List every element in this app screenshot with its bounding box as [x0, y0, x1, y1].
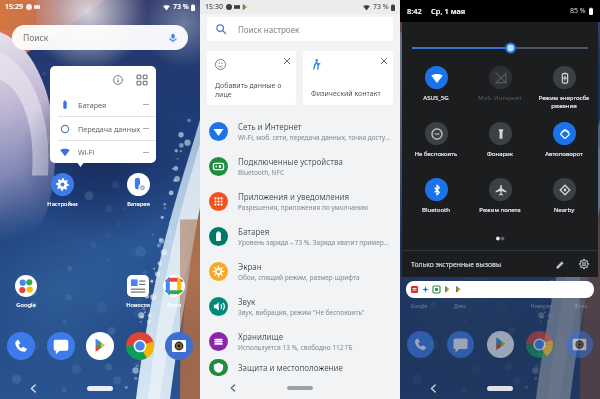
staticText: Используется 13 %, свободно 112 ГБ — [238, 343, 353, 352]
staticText: Фонарик — [469, 150, 531, 158]
button[interactable]: Wi-Fi — [50, 141, 156, 163]
button[interactable]: Защита и местоположение — [200, 359, 400, 376]
button[interactable] — [406, 281, 594, 298]
button[interactable]: Messages — [447, 331, 474, 358]
staticText: Сеть и Интернет — [238, 121, 302, 132]
button[interactable]: Подключенные устройства — [200, 149, 400, 184]
button[interactable]: ASUS_5G — [404, 63, 468, 119]
button[interactable]: Батарея — [121, 173, 156, 208]
staticText: Настройки — [45, 200, 80, 208]
staticText: Nearby — [533, 206, 595, 214]
button[interactable]: Сеть и Интернет — [200, 114, 400, 149]
staticText: Подключенные устройства — [238, 156, 343, 167]
staticText: Приложения и уведомления — [238, 191, 350, 202]
button[interactable]: Dismiss — [303, 51, 393, 105]
button[interactable]: Phone — [7, 332, 35, 360]
staticText: Звук — [238, 296, 256, 307]
staticText: Google — [408, 303, 430, 310]
staticText: Bluetooth — [405, 206, 467, 214]
staticText: Обои, спящий режим, размер шрифта — [238, 273, 360, 282]
staticText: Батарея — [78, 100, 141, 110]
staticText: Батарея — [238, 226, 270, 237]
staticText: Wi-Fi, моб. сети, передача данных, точка… — [238, 133, 390, 142]
staticText: Диск — [449, 303, 471, 310]
button[interactable]: Dismiss — [207, 51, 296, 105]
button[interactable]: Приложения и уведомления — [200, 184, 400, 219]
button[interactable]: Батарея — [200, 219, 400, 254]
staticText: Фото — [570, 303, 592, 310]
button[interactable]: Звук — [200, 289, 400, 324]
staticText: Автоповорот — [533, 150, 595, 158]
button[interactable]: Home — [87, 386, 113, 391]
button[interactable]: Bluetooth — [404, 175, 468, 231]
button[interactable]: Поиск — [12, 25, 188, 50]
staticText: Только экстренные вызовы — [411, 260, 502, 269]
staticText: 8:42 — [407, 6, 422, 16]
staticText: Фото — [157, 301, 191, 309]
staticText: Батарея — [121, 200, 156, 208]
staticText: Уровень заряда – 73 %. Заряда хватит при… — [238, 238, 389, 247]
button[interactable]: Back — [227, 382, 239, 394]
button[interactable]: Режим полета — [468, 175, 532, 231]
button[interactable]: Новости — [121, 275, 155, 309]
staticText: Моб. Интернет — [469, 94, 531, 102]
staticText: Режим энергосбе режения — [533, 94, 595, 110]
button[interactable]: Play Store — [86, 332, 114, 360]
staticText: ASUS_5G — [405, 94, 467, 102]
staticText: 73 % — [373, 2, 389, 12]
button[interactable]: Батарея — [50, 93, 156, 116]
button[interactable]: Хранилище — [200, 324, 400, 359]
button[interactable]: Phone — [407, 331, 434, 358]
button[interactable]: Dismiss — [281, 55, 292, 66]
button[interactable]: Info — [110, 72, 125, 87]
staticText: Bluetooth, NFC — [238, 168, 285, 177]
button[interactable]: Settings — [576, 256, 592, 272]
button[interactable]: Поиск настроек — [207, 17, 393, 41]
staticText: Защита и местоположение — [238, 362, 343, 373]
button[interactable]: Моб. Интернет — [468, 63, 532, 119]
button[interactable]: Dismiss — [378, 55, 389, 66]
staticText: Хранилище — [238, 331, 284, 342]
staticText: Поиск настроек — [238, 24, 300, 35]
button[interactable]: Chrome — [126, 332, 154, 360]
staticText: Добавить данные о лице — [215, 81, 292, 99]
staticText: Новости — [530, 303, 552, 310]
button[interactable]: Настройки — [45, 173, 80, 208]
button[interactable]: Передача данных — [50, 117, 156, 140]
button[interactable]: Play Store — [487, 331, 514, 358]
staticText: Экран — [238, 261, 262, 272]
staticText: Передача данных — [78, 124, 141, 134]
staticText: Режим полета — [469, 206, 531, 214]
button[interactable]: Экран — [200, 254, 400, 289]
staticText: Разрешения, приложения по умолчанию — [238, 203, 369, 212]
button[interactable]: Фонарик — [468, 119, 532, 175]
staticText: 15:29 — [5, 2, 23, 12]
staticText: Google — [9, 301, 43, 309]
button[interactable]: Home — [487, 386, 513, 391]
button[interactable]: Google — [9, 275, 43, 309]
staticText: Новости — [121, 301, 155, 309]
button[interactable]: Не беспокоить — [404, 119, 468, 175]
button[interactable]: Home — [287, 386, 313, 390]
staticText: Ср, 1 мая — [431, 6, 466, 16]
staticText: Звук, вибрация, режим "Не беспокоить" — [238, 308, 365, 317]
staticText: Поиск — [23, 32, 49, 44]
button[interactable]: Camera — [566, 331, 593, 358]
button[interactable]: Chrome — [526, 331, 553, 358]
staticText: 15:30 — [205, 2, 223, 12]
button[interactable]: Фото — [157, 275, 191, 309]
staticText: Не беспокоить — [405, 150, 467, 158]
button[interactable]: Back — [426, 381, 440, 395]
button[interactable]: Back — [26, 381, 40, 395]
button[interactable]: Camera — [165, 332, 193, 360]
staticText: Физический контакт — [311, 89, 381, 99]
button[interactable]: Edit — [552, 256, 568, 272]
button[interactable]: Nearby — [532, 175, 596, 231]
button[interactable]: Widgets — [134, 72, 149, 87]
button[interactable]: Messages — [47, 332, 75, 360]
staticText: Wi-Fi — [78, 147, 141, 157]
staticText: 73 % — [173, 2, 189, 12]
button[interactable]: Режим энергосбе режения — [532, 63, 596, 119]
button[interactable]: Автоповорот — [532, 119, 596, 175]
